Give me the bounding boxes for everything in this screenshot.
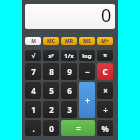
button[interactable]: x to the power y (43, 50, 59, 61)
staticText: × (103, 85, 108, 96)
staticText: 2 (49, 104, 54, 115)
button[interactable]: 8 (43, 63, 59, 80)
staticText: MC (47, 38, 55, 45)
staticText: 3 (67, 104, 72, 115)
staticText: 5 (49, 85, 54, 96)
button[interactable]: Pi (97, 50, 113, 61)
button[interactable]: MC (43, 37, 59, 45)
button[interactable]: MS (79, 37, 95, 45)
staticText: . (32, 123, 35, 134)
staticText: 8 (49, 66, 54, 77)
button[interactable]: Multiply (97, 82, 113, 99)
button[interactable]: Square root (25, 50, 41, 61)
staticText: 7 (31, 66, 36, 77)
staticText: M+ (101, 38, 109, 45)
staticText: M (31, 38, 36, 45)
button[interactable]: 9 (61, 63, 77, 80)
button[interactable]: M+ (97, 37, 113, 45)
staticText: √ (31, 52, 36, 59)
staticText: 0 (101, 4, 112, 28)
button[interactable]: Clear (97, 63, 113, 80)
staticText: ÷ (103, 104, 108, 115)
staticText: 1/x (64, 52, 74, 60)
staticText: + (85, 95, 90, 106)
button[interactable]: Reciprocal (61, 50, 77, 61)
button[interactable]: Equals (61, 120, 95, 136)
button[interactable]: Plus (79, 82, 95, 118)
button[interactable]: 6 (61, 82, 77, 99)
staticText: − (85, 66, 90, 77)
button[interactable]: 7 (25, 63, 41, 80)
staticText: MR (65, 38, 73, 45)
staticText: = (76, 123, 81, 134)
staticText: 9 (67, 66, 72, 77)
staticText: MS (83, 38, 91, 45)
staticText: 1 (31, 104, 36, 115)
button[interactable]: 0 (43, 120, 59, 136)
staticText: 0 (49, 123, 54, 134)
button[interactable]: 4 (25, 82, 41, 99)
staticText: 6 (67, 85, 72, 96)
button[interactable]: 1 (25, 101, 41, 118)
button[interactable]: Divide (97, 101, 113, 118)
button[interactable]: 3 (61, 101, 77, 118)
staticText: log (82, 52, 92, 60)
staticText: % (101, 123, 109, 134)
button[interactable]: Decimal point (25, 120, 41, 136)
button[interactable]: Minus (79, 63, 95, 80)
button[interactable]: 5 (43, 82, 59, 99)
staticText: 4 (31, 85, 36, 96)
staticText: C (102, 66, 108, 77)
button[interactable]: M (25, 37, 41, 45)
button[interactable]: 2 (43, 101, 59, 118)
staticText: π (103, 52, 107, 59)
staticText: xʸ (48, 52, 54, 60)
button[interactable]: Result display (25, 4, 115, 29)
button[interactable]: MR (61, 37, 77, 45)
button[interactable]: Logarithm (79, 50, 95, 61)
button[interactable]: Percent (97, 120, 113, 136)
